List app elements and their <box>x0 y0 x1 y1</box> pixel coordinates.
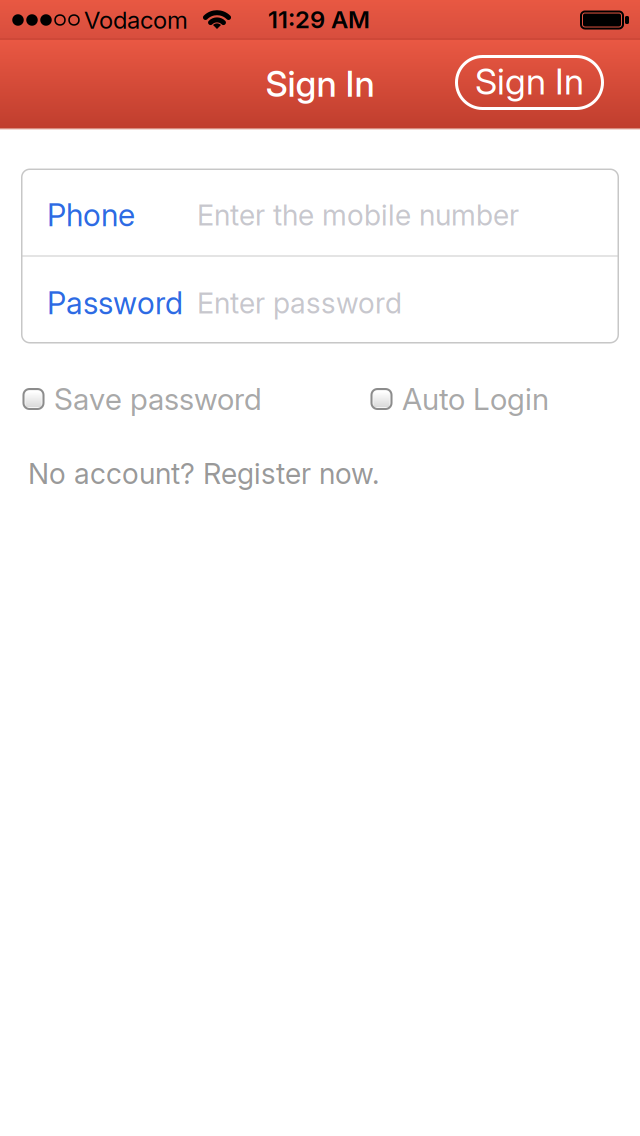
button[interactable]: No account? Register now. <box>28 456 428 491</box>
staticText: Sign In <box>265 63 374 105</box>
staticText: Auto Login <box>402 381 549 417</box>
staticText: Enter the mobile number <box>197 198 519 232</box>
staticText: Save password <box>54 381 262 417</box>
staticText: No account? Register now. <box>28 456 379 491</box>
staticText: 11:29 AM <box>268 5 370 34</box>
button[interactable]: Save password <box>22 381 302 417</box>
button[interactable]: Sign In <box>455 55 604 110</box>
staticText: Enter password <box>197 286 402 320</box>
staticText: Phone <box>47 196 135 233</box>
button[interactable]: Password <box>21 256 619 343</box>
staticText: Sign In <box>475 60 584 103</box>
staticText: Password <box>47 284 183 321</box>
button[interactable]: Phone <box>21 168 619 255</box>
staticText: Vodacom <box>84 5 188 34</box>
button[interactable]: Auto Login <box>370 381 610 417</box>
